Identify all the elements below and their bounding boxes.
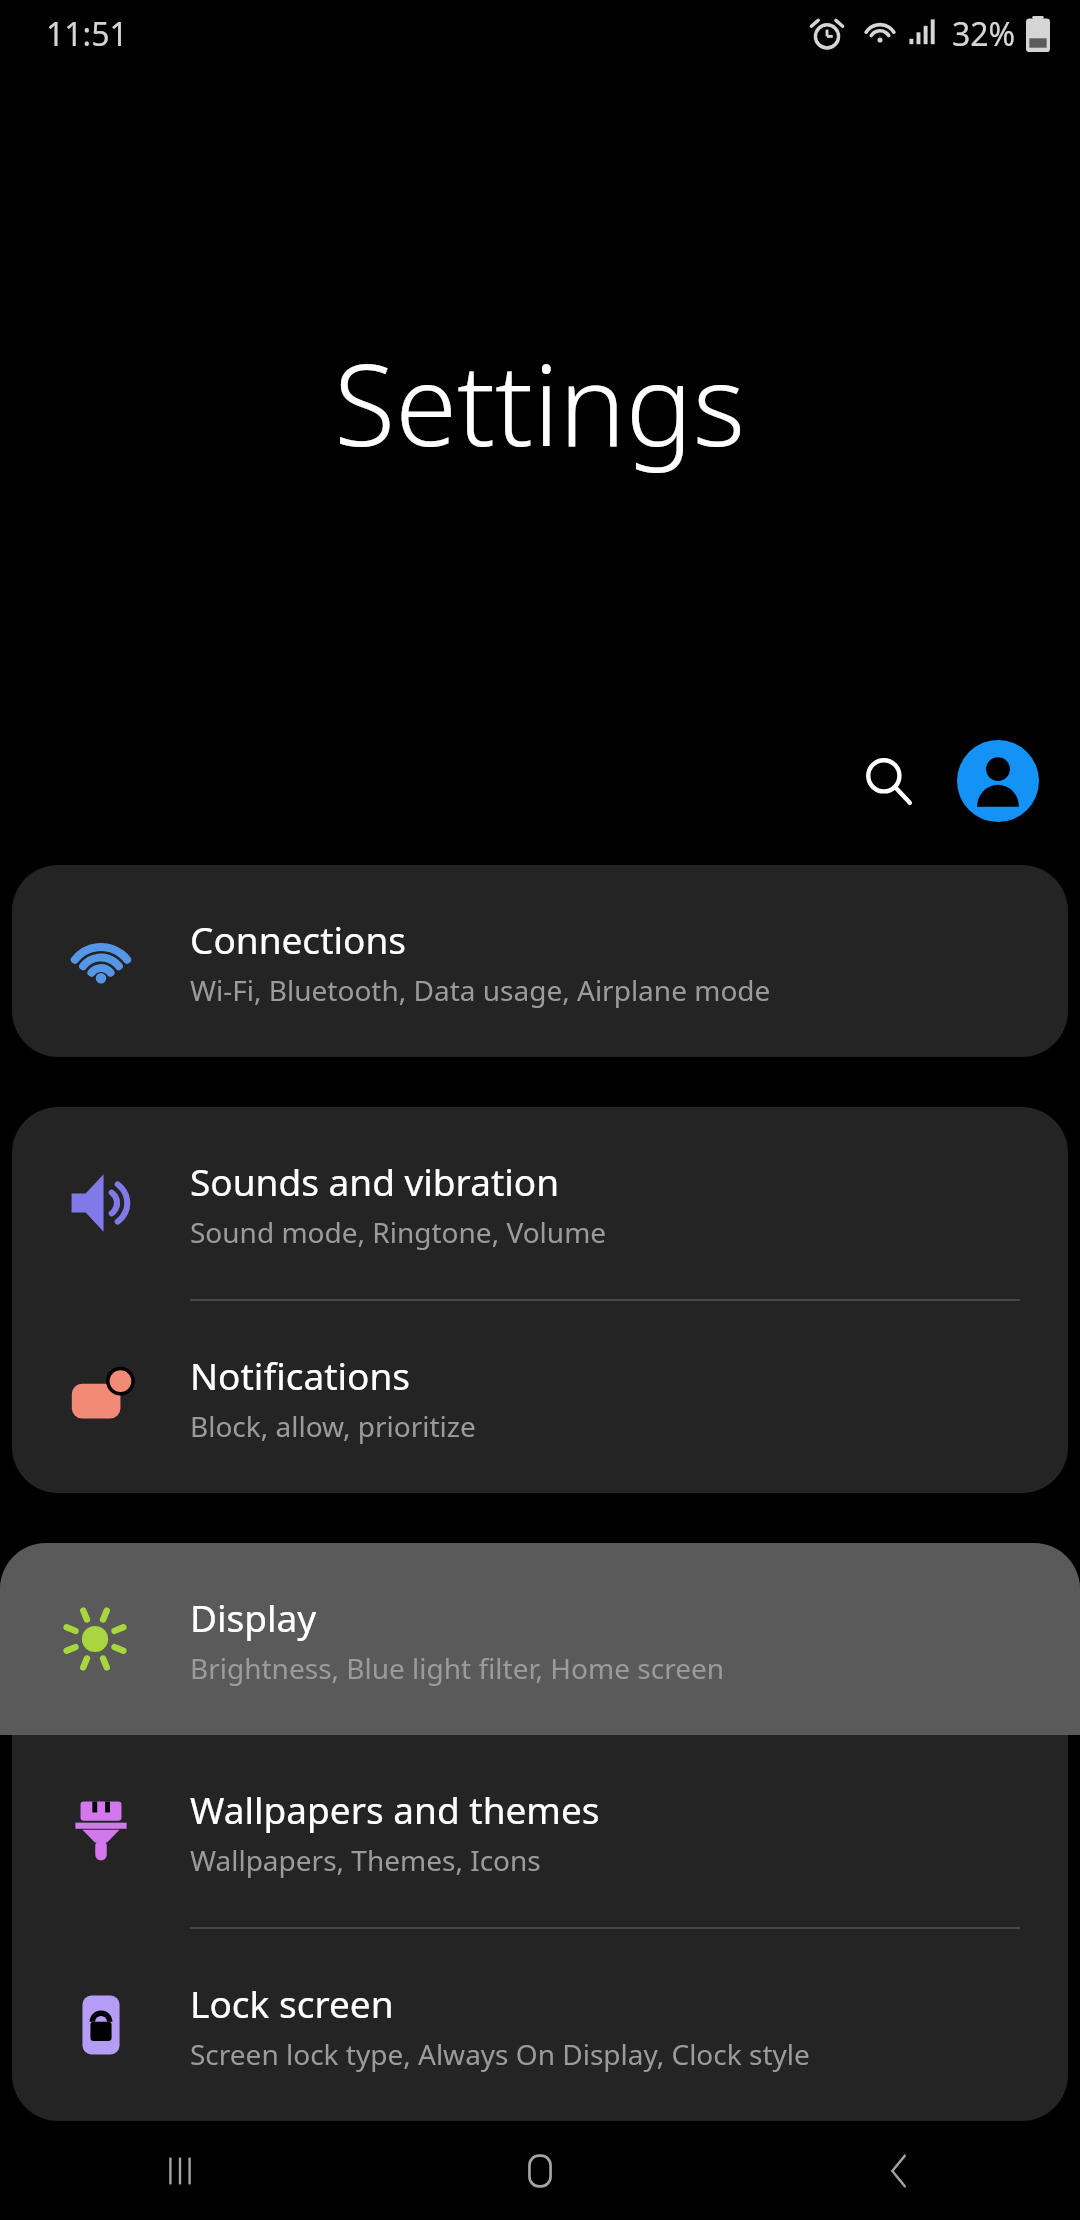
staticText: Notifications — [190, 1350, 411, 1400]
button[interactable]: Connections — [12, 865, 1068, 1057]
button[interactable]: Samsung account — [952, 735, 1044, 827]
staticText: Wallpapers and themes — [190, 1784, 600, 1834]
button[interactable]: Wallpapers and themes — [12, 1735, 1068, 1927]
button[interactable]: Sounds and vibration — [12, 1107, 1068, 1299]
button[interactable]: Back — [720, 2121, 1080, 2220]
staticText: Settings — [334, 326, 746, 479]
staticText: Block, allow, prioritize — [190, 1407, 476, 1445]
staticText: Wi-Fi, Bluetooth, Data usage, Airplane m… — [190, 971, 771, 1009]
button[interactable]: Lock screen — [12, 1929, 1068, 2121]
staticText: 11:51 — [46, 12, 128, 56]
staticText: Connections — [190, 914, 407, 964]
staticText: Brightness, Blue light filter, Home scre… — [190, 1649, 725, 1687]
button[interactable]: Display — [0, 1543, 1080, 1735]
staticText: Sound mode, Ringtone, Volume — [190, 1213, 607, 1251]
staticText: Sounds and vibration — [190, 1156, 560, 1206]
staticText: Wallpapers, Themes, Icons — [190, 1841, 541, 1879]
staticText: Lock screen — [190, 1978, 394, 2028]
button[interactable]: Recent apps — [0, 2121, 360, 2220]
staticText: Screen lock type, Always On Display, Clo… — [190, 2035, 810, 2073]
button[interactable]: Search settings — [842, 735, 934, 827]
staticText: Display — [190, 1592, 317, 1642]
staticText: 32% — [952, 12, 1016, 56]
button[interactable]: Notifications — [12, 1301, 1068, 1493]
button[interactable]: Home — [360, 2121, 720, 2220]
